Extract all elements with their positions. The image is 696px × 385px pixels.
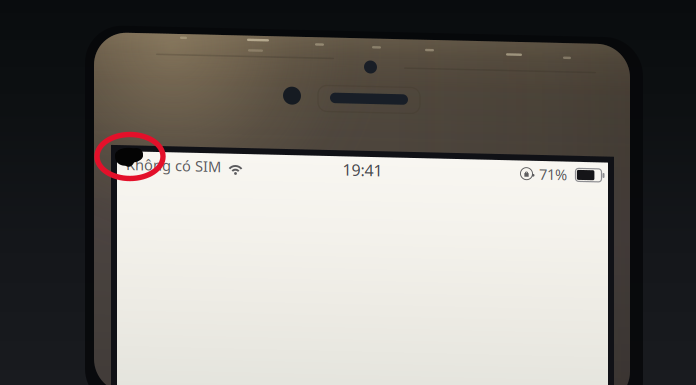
staticText: 19:41 [342, 156, 382, 177]
staticText: 71% [539, 157, 567, 176]
staticText: Không có SIM [126, 157, 221, 176]
